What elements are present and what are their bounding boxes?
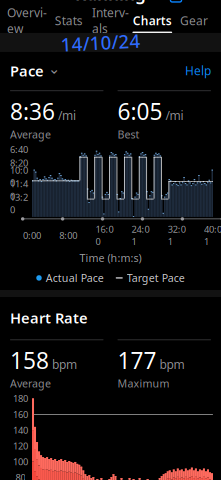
staticText: 11:40 (10, 177, 28, 202)
staticText: 13:20 (10, 191, 28, 216)
staticText: 16:00 (95, 223, 113, 248)
staticText: /mi (58, 107, 76, 123)
staticText: 8:36 (10, 96, 55, 126)
staticText: Average (10, 376, 51, 390)
button[interactable]: Heart Rate (10, 304, 88, 331)
staticText: 80 (15, 471, 25, 480)
staticText: 100 (13, 455, 28, 468)
staticText: Help (185, 63, 211, 79)
staticText: 24:01 (132, 223, 150, 248)
staticText: Target Pace (127, 271, 185, 285)
staticText: 158 (10, 345, 49, 375)
staticText: Running (75, 0, 146, 5)
staticText: 10:00 (10, 164, 28, 189)
staticText: bpm (159, 356, 184, 372)
staticText: Intervals (92, 5, 129, 37)
button[interactable]: Overview (6, 7, 48, 33)
button[interactable]: Help (185, 59, 211, 83)
staticText: Time (h:m:s) (79, 251, 141, 265)
staticText: 32:01 (168, 223, 186, 248)
staticText: 6:05 (117, 96, 162, 126)
staticText: Pace (10, 61, 44, 80)
staticText: Best (117, 127, 139, 141)
staticText: Maximum (117, 376, 169, 390)
staticText: 14/10/24 (60, 30, 140, 55)
staticText: 120 (13, 440, 28, 452)
button[interactable]: Pace (10, 57, 60, 84)
staticText: Gear (180, 13, 208, 29)
staticText: Heart Rate (10, 308, 88, 327)
button[interactable]: Charts (131, 7, 173, 33)
button[interactable]: Gear (173, 7, 215, 33)
staticText: 0:00 (23, 229, 41, 241)
staticText: 140 (13, 424, 28, 436)
staticText: 180 (13, 392, 28, 405)
staticText: 6:40 (10, 143, 28, 156)
staticText: Actual Pace (46, 271, 104, 285)
staticText: 8:20 (10, 157, 28, 169)
staticText: Overview (7, 5, 47, 37)
staticText: /mi (165, 107, 183, 123)
staticText: 160 (13, 408, 28, 420)
staticText: 177 (117, 345, 156, 375)
staticText: 40:01 (204, 223, 221, 248)
staticText: 8:00 (59, 229, 77, 241)
staticText: ⌄ (48, 60, 60, 77)
staticText: bpm (52, 356, 77, 372)
staticText: Charts (133, 13, 172, 29)
staticText: Average (10, 127, 51, 141)
button[interactable]: Stats (48, 7, 90, 33)
staticText: Stats (55, 13, 83, 29)
button[interactable]: Share (163, 0, 189, 6)
button[interactable]: Intervals (90, 7, 131, 33)
